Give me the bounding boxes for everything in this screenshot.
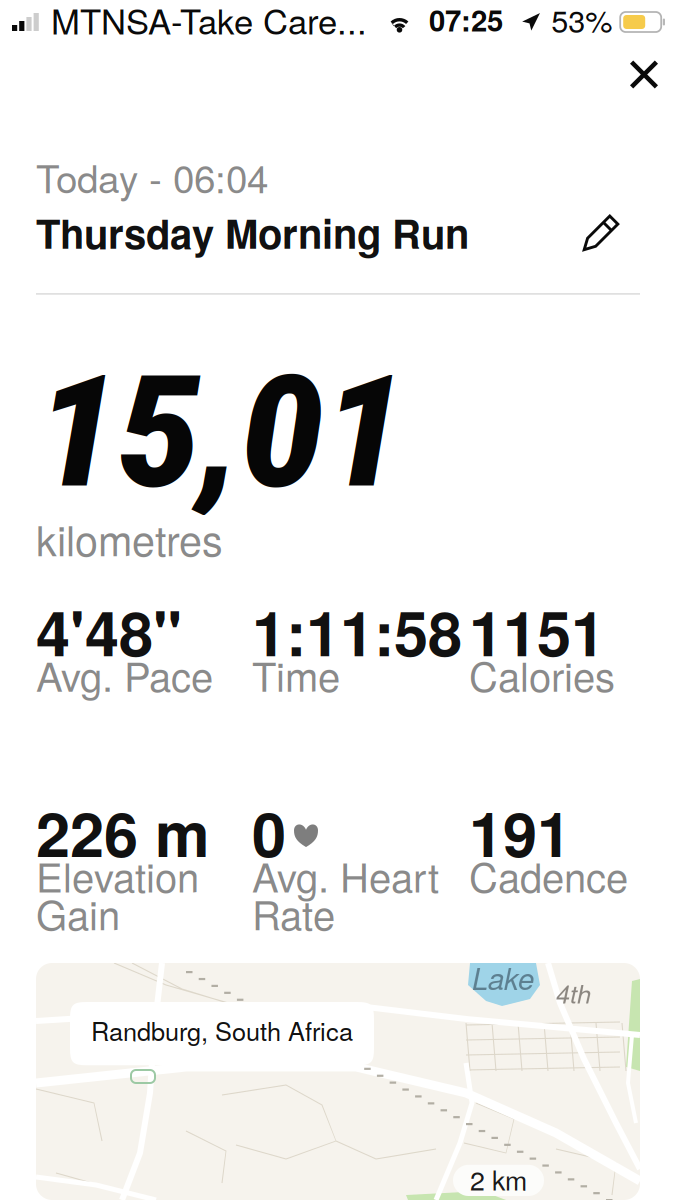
staticText: Rate — [252, 884, 335, 942]
staticText: Randburg, South Africa — [91, 1012, 353, 1048]
staticText: 191 — [469, 788, 571, 876]
button[interactable]: Randburg, South Africa — [70, 1002, 374, 1065]
staticText: 53% — [551, 0, 612, 41]
staticText: 4'48" — [36, 587, 182, 675]
button[interactable]: Close — [613, 43, 675, 105]
staticText: Avg. Pace — [36, 646, 213, 703]
staticText: 0 — [252, 788, 286, 876]
staticText: Gain — [36, 884, 120, 942]
staticText: Lake — [472, 957, 534, 998]
staticText: Time — [252, 646, 340, 703]
staticText: Calories — [469, 646, 615, 703]
staticText: 1151 — [469, 587, 605, 675]
staticText: 226 m — [36, 788, 210, 876]
staticText: Today - 06:04 — [36, 149, 268, 204]
staticText: Avg. Heart — [252, 847, 439, 904]
staticText: Cadence — [469, 847, 628, 904]
button[interactable]: Edit activity — [582, 218, 640, 253]
staticText: MTNSA-Take Care... — [51, 0, 367, 44]
staticText: 4th — [556, 975, 591, 1011]
staticText: kilometres — [36, 509, 223, 568]
staticText: 1:11:58 — [252, 587, 462, 675]
staticText: 2 km — [470, 1160, 527, 1198]
staticText: Thursday Morning Run — [36, 204, 469, 261]
staticText: 15,01 — [36, 341, 405, 523]
staticText: Elevation — [36, 847, 199, 904]
staticText: 07:25 — [429, 0, 503, 40]
